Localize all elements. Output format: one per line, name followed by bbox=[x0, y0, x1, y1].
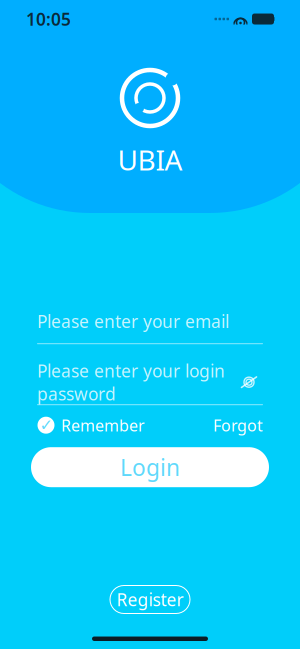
staticText: ✓ bbox=[39, 416, 52, 434]
button[interactable]: ✓ bbox=[37, 414, 145, 436]
staticText: UBIA bbox=[117, 141, 182, 178]
button[interactable]: Show password bbox=[235, 370, 263, 394]
staticText: Remember bbox=[61, 415, 145, 436]
button[interactable]: Login bbox=[31, 447, 269, 487]
staticText: Forgot bbox=[213, 415, 263, 436]
staticText: Please enter your login password bbox=[37, 359, 225, 405]
button[interactable]: Forgot bbox=[213, 414, 263, 436]
staticText: 10:05 bbox=[26, 7, 71, 30]
staticText: Login bbox=[120, 452, 180, 482]
staticText: Register bbox=[116, 588, 183, 611]
button[interactable]: Register bbox=[110, 585, 190, 613]
staticText: Please enter your email bbox=[37, 310, 229, 333]
